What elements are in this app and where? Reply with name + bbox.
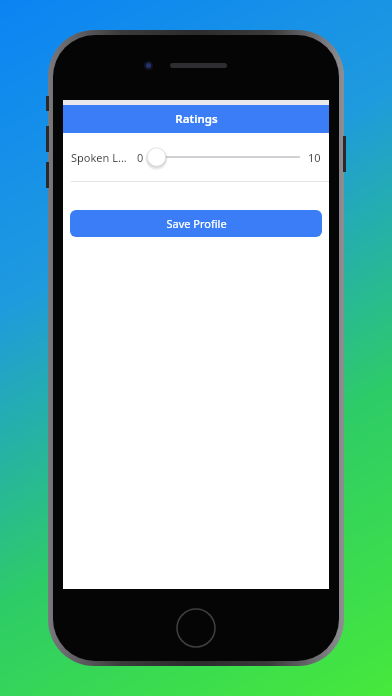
staticText: Ratings — [175, 111, 218, 127]
button[interactable]: Spoken L... — [63, 133, 329, 181]
staticText: Spoken L... — [71, 150, 127, 165]
staticText: 10 — [308, 150, 321, 165]
staticText: Save Profile — [166, 216, 227, 231]
button[interactable]: Ratings — [63, 105, 329, 133]
button[interactable]: Save Profile — [70, 210, 322, 237]
other: Home — [176, 608, 216, 648]
staticText: 0 — [137, 150, 144, 165]
